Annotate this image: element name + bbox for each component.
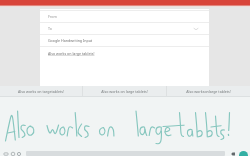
button[interactable]: Also worksonlarge tablets! <box>167 86 250 96</box>
staticText: Also worksonlarge tablets! <box>186 89 231 94</box>
staticText: Google Handwriting Input <box>48 38 93 43</box>
staticText: From <box>48 14 57 19</box>
button[interactable]: Language <box>10 151 15 156</box>
button[interactable]: From <box>40 11 209 22</box>
button[interactable]: Also works on large tablets! <box>83 86 166 96</box>
staticText: Also works on large tablets! <box>101 89 148 94</box>
staticText: Also works on targetablets! <box>18 89 64 94</box>
button[interactable]: Send <box>239 151 248 156</box>
button[interactable]: Also works on large tablets! <box>48 47 209 59</box>
button[interactable]: Also works on targetablets! <box>0 86 82 96</box>
button[interactable]: Keyboard <box>3 151 8 156</box>
staticText: To <box>48 26 52 31</box>
button[interactable]: Google Handwriting Input <box>40 35 209 46</box>
staticText: Also works on large tablets! <box>48 51 95 56</box>
button[interactable]: Settings <box>16 151 21 156</box>
button[interactable] <box>0 0 250 7</box>
button[interactable]: Backspace <box>230 151 235 156</box>
